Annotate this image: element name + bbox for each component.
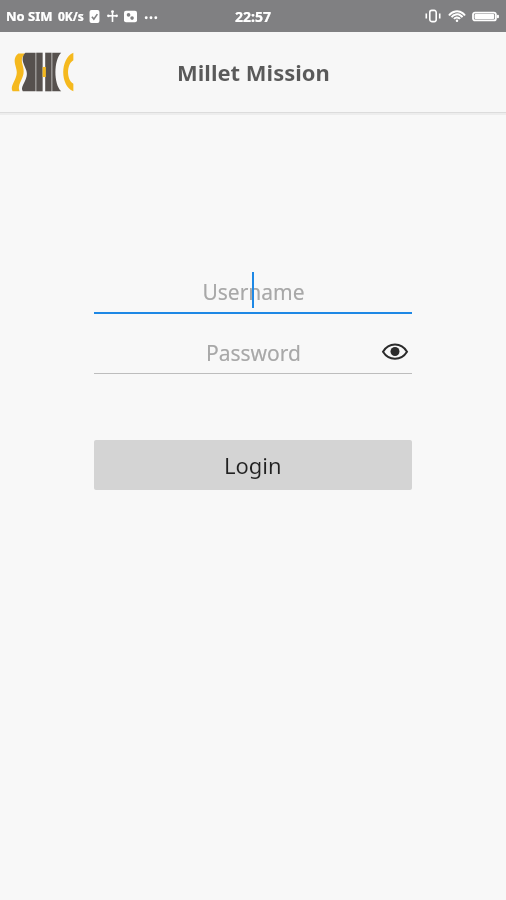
button[interactable]: App logo (10, 51, 74, 93)
button[interactable]: Password (94, 332, 412, 374)
staticText: No SIM (6, 7, 53, 25)
staticText: 0K/s (58, 8, 84, 24)
staticText: Username (202, 278, 305, 307)
staticText: 22:57 (235, 7, 271, 26)
button[interactable]: Login (94, 440, 412, 490)
staticText: Password (206, 339, 301, 368)
staticText: Login (224, 450, 282, 480)
staticText: Millet Mission (177, 57, 330, 87)
button[interactable]: Show password (380, 336, 410, 366)
button[interactable]: Username (94, 268, 412, 314)
